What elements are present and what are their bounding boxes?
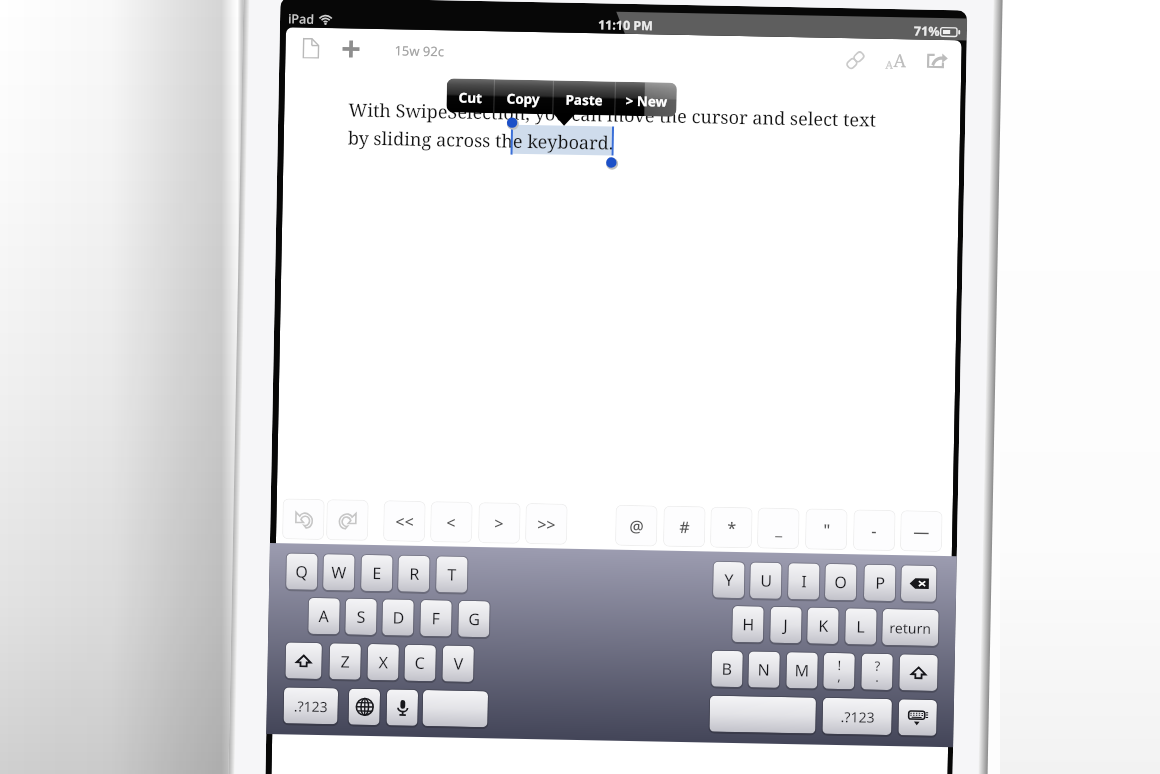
staticText: 11:10 PM	[598, 16, 653, 34]
staticText: A	[893, 48, 907, 72]
button[interactable]: A	[308, 598, 340, 634]
staticText: #	[679, 516, 690, 538]
button[interactable]: Paste	[553, 80, 615, 116]
button[interactable]: Hide keyboard	[898, 699, 937, 736]
button[interactable]: Share	[924, 48, 951, 73]
button[interactable]: T	[436, 556, 468, 593]
staticText: H	[742, 613, 755, 635]
staticText: 71%	[914, 22, 940, 40]
button[interactable]: B	[711, 651, 743, 687]
staticText: "	[823, 519, 830, 541]
staticText: .?123	[294, 696, 328, 716]
staticText: >>	[537, 513, 556, 536]
button[interactable]: >	[478, 502, 521, 544]
button[interactable]: return	[882, 609, 939, 646]
staticText: With SwipeSelection, you can move the cu…	[348, 97, 876, 133]
button[interactable]: L	[845, 608, 877, 645]
button[interactable]: P	[864, 564, 896, 601]
staticText: .	[875, 668, 880, 686]
button[interactable]: D	[382, 599, 414, 636]
staticText: F	[431, 607, 441, 629]
staticText: Z	[340, 650, 351, 673]
button[interactable]: >>	[525, 503, 568, 545]
button[interactable]: X	[367, 644, 399, 680]
button[interactable]: "	[805, 508, 848, 550]
staticText: B	[721, 658, 733, 680]
button[interactable]: Documents	[298, 32, 324, 63]
button[interactable]: Shift	[285, 642, 322, 679]
button[interactable]: Copy	[494, 79, 553, 114]
staticText: D	[392, 606, 405, 629]
button[interactable]: > New	[615, 82, 677, 117]
staticText: iPad	[288, 10, 314, 28]
staticText: @	[629, 515, 644, 537]
button[interactable]: Link	[841, 46, 870, 73]
button[interactable]: .?123	[822, 698, 892, 735]
button[interactable]: N	[748, 651, 780, 688]
staticText: Copy	[506, 89, 541, 108]
button[interactable]: G	[458, 601, 490, 637]
staticText: Paste	[565, 91, 604, 109]
staticText: <	[446, 511, 456, 534]
staticText: N	[757, 658, 771, 681]
button[interactable]: Q	[286, 553, 318, 590]
button[interactable]: Shift	[899, 654, 938, 691]
button[interactable]: V	[442, 645, 474, 682]
staticText: I	[801, 570, 807, 592]
button[interactable]: C	[404, 645, 436, 681]
button[interactable]: I	[788, 563, 820, 600]
button[interactable]: Undo	[282, 498, 325, 540]
button[interactable]: Z	[329, 643, 361, 680]
button[interactable]: Backspace	[901, 565, 937, 602]
button[interactable]	[709, 696, 816, 734]
button[interactable]: <	[430, 501, 473, 543]
button[interactable]: J	[770, 607, 802, 643]
staticText: return	[889, 618, 932, 638]
staticText: J	[783, 614, 789, 636]
button[interactable]	[422, 690, 488, 727]
button[interactable]: #	[663, 506, 706, 547]
button[interactable]: R	[398, 555, 430, 592]
staticText: *	[727, 517, 736, 539]
staticText: M	[794, 659, 810, 681]
button[interactable]: H	[732, 606, 764, 643]
button[interactable]: @	[615, 505, 658, 546]
button[interactable]: -	[853, 509, 896, 551]
staticText: E	[372, 562, 381, 584]
staticText: R	[409, 563, 419, 585]
staticText: A	[885, 57, 893, 72]
button[interactable]: O	[825, 564, 857, 600]
button[interactable]: *	[710, 507, 753, 548]
button[interactable]: —	[900, 510, 943, 552]
staticText: !	[837, 656, 842, 674]
button[interactable]: Cut	[446, 78, 494, 113]
button[interactable]: K	[807, 607, 839, 644]
staticText: <<	[395, 510, 414, 533]
staticText: C	[414, 652, 426, 674]
button[interactable]: New document	[337, 34, 365, 63]
button[interactable]: Y	[713, 562, 745, 598]
staticText: X	[378, 651, 389, 673]
staticText: A	[318, 605, 330, 627]
button[interactable]: Dictate	[386, 689, 418, 726]
staticText: G	[468, 608, 481, 630]
button[interactable]: Language	[348, 689, 380, 725]
button[interactable]: ?	[861, 653, 893, 690]
button[interactable]: !	[823, 653, 855, 689]
button[interactable]: .?123	[283, 687, 338, 724]
button[interactable]: M	[786, 652, 818, 689]
button[interactable]: Redo	[326, 499, 369, 541]
staticText: ?	[874, 657, 881, 675]
button[interactable]: _	[757, 507, 800, 549]
staticText: W	[331, 561, 347, 583]
button[interactable]: <<	[383, 500, 426, 542]
button[interactable]: S	[345, 598, 377, 635]
staticText: K	[818, 615, 829, 637]
staticText: U	[760, 569, 772, 592]
button[interactable]: Text size	[881, 48, 911, 72]
button[interactable]: W	[323, 554, 355, 591]
button[interactable]: E	[361, 555, 393, 591]
staticText: Cut	[458, 89, 483, 107]
button[interactable]: F	[420, 600, 452, 637]
button[interactable]: U	[750, 562, 782, 599]
